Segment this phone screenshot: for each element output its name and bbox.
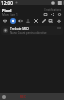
staticText: Pixel [2, 8, 12, 13]
button[interactable]: Quick setting 4 [33, 18, 39, 24]
staticText: 12:00 [1, 0, 13, 5]
staticText: Nuno Count pentru obiective [10, 31, 47, 35]
staticText: REC [20, 95, 26, 99]
button[interactable]: Header action 2 [57, 13, 62, 16]
button[interactable]: Apps [2, 95, 6, 99]
button[interactable]: Header action 1 [50, 13, 55, 16]
button[interactable]: Quick setting 2 [17, 18, 23, 24]
button[interactable]: Trebuie MIO [1, 26, 63, 35]
button[interactable]: Quick setting 1 [10, 18, 16, 24]
button[interactable]: Quick setting 6 [48, 18, 54, 24]
staticText: Mon, Jan 1 [2, 13, 18, 16]
staticText: 3 notifications [44, 8, 62, 12]
button[interactable]: Quick setting 3 [25, 18, 31, 24]
staticText: Trebuie MIO [10, 27, 29, 31]
button[interactable]: Quick setting 0 [2, 18, 8, 24]
button[interactable]: Quick setting 5 [41, 18, 47, 24]
button[interactable]: Header action 0 [43, 13, 48, 16]
button[interactable]: Quick setting 7 [56, 18, 62, 24]
